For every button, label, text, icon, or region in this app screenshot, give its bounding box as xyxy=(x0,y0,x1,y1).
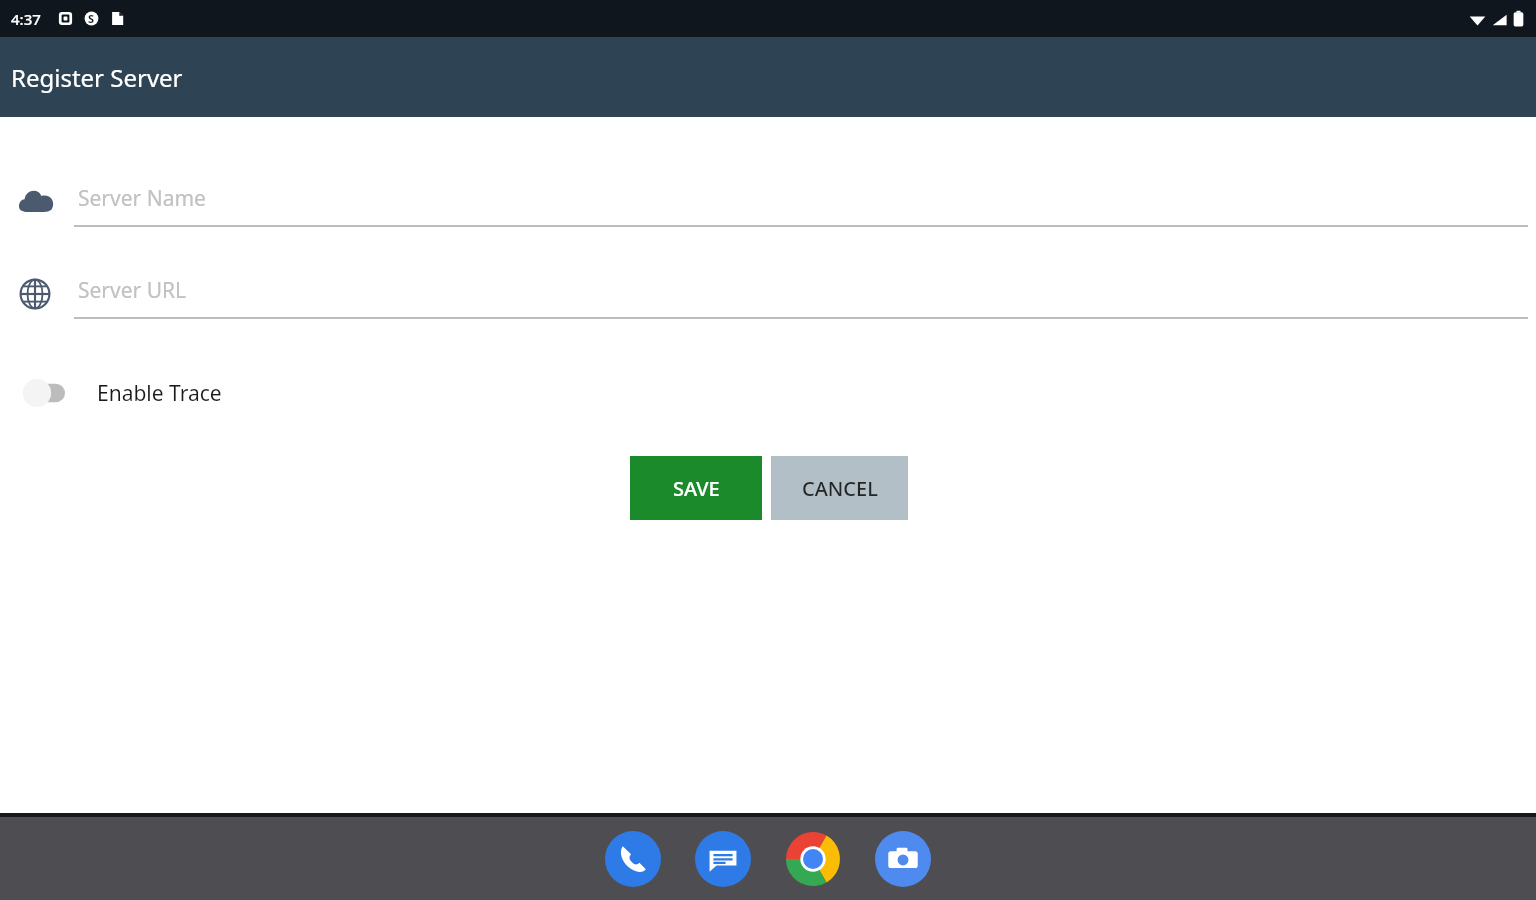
staticText: CANCEL xyxy=(802,475,878,502)
button[interactable]: CANCEL xyxy=(771,456,908,520)
button[interactable]: Server URL xyxy=(0,268,1536,320)
button[interactable]: SAVE xyxy=(630,456,762,520)
staticText: S xyxy=(88,11,95,26)
button[interactable]: Server Name xyxy=(0,176,1536,228)
button[interactable]: Enable Trace xyxy=(0,371,1536,415)
staticText: Server Name xyxy=(78,184,206,213)
button[interactable]: Messages xyxy=(695,831,751,887)
staticText: Enable Trace xyxy=(97,379,222,408)
staticText: SAVE xyxy=(673,475,720,502)
staticText: Server URL xyxy=(78,276,187,305)
button[interactable]: Phone xyxy=(605,831,661,887)
button[interactable]: Camera xyxy=(875,831,931,887)
staticText: Register Server xyxy=(11,61,183,94)
button[interactable]: Chrome xyxy=(785,831,841,887)
staticText: 4:37 xyxy=(11,9,41,29)
